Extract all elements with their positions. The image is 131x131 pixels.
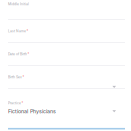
staticText: Birth Sex: [8, 75, 22, 79]
staticText: Practice: [8, 101, 21, 105]
staticText: Last Name: [8, 29, 26, 33]
staticText: *: [22, 101, 24, 105]
button[interactable]: Middle Initial: [0, 0, 131, 20]
staticText: Date of Birth: [8, 52, 27, 56]
button[interactable]: Date of Birth: [0, 43, 131, 66]
button[interactable]: Practice: [0, 89, 131, 131]
button[interactable]: Birth Sex: [0, 66, 131, 89]
staticText: *: [27, 29, 29, 33]
staticText: Fictional Physicians: [8, 108, 56, 114]
staticText: *: [23, 75, 25, 79]
button[interactable]: Last Name: [0, 20, 131, 43]
staticText: Middle Initial: [8, 2, 29, 6]
staticText: *: [28, 52, 30, 56]
